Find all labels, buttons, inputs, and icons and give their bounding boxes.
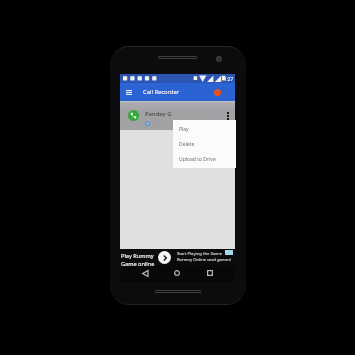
button[interactable]: Upload to Drive xyxy=(173,152,236,167)
button[interactable]: Home xyxy=(169,265,185,281)
staticText: Upload to Drive xyxy=(179,156,216,163)
button[interactable]: Record call xyxy=(208,83,226,101)
button[interactable]: Pandey G xyxy=(120,101,235,130)
staticText: Pandey G xyxy=(145,110,172,118)
staticText: Rummy Online card games! xyxy=(177,257,232,263)
staticText: Delete xyxy=(179,141,195,148)
staticText: Call Recorder xyxy=(143,88,180,96)
button[interactable]: Play Rummy xyxy=(120,249,235,266)
staticText: 1:27 xyxy=(224,76,234,82)
staticText: Game online xyxy=(121,260,155,268)
button[interactable]: Play xyxy=(173,122,236,137)
button[interactable]: Open ad xyxy=(158,251,171,264)
staticText: Play xyxy=(179,126,189,133)
button[interactable]: Back xyxy=(137,265,153,281)
staticText: Play Rummy xyxy=(121,252,154,260)
button[interactable]: Recent apps xyxy=(202,265,218,281)
button[interactable]: More options xyxy=(222,106,233,126)
button[interactable]: Open navigation drawer xyxy=(120,83,137,101)
staticText: Start Playing the Game xyxy=(177,251,223,257)
button[interactable]: Delete xyxy=(173,137,236,152)
